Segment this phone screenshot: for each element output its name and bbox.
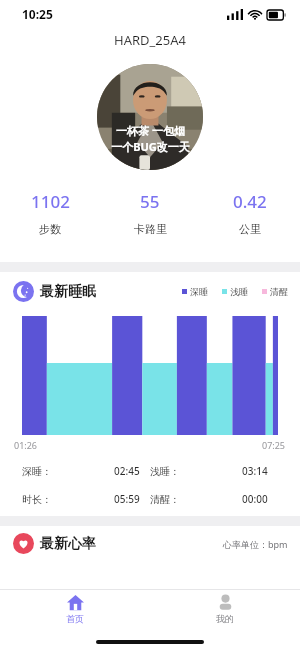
staticText: 05:59	[114, 492, 140, 506]
staticText: 步数	[39, 222, 61, 236]
staticText: 1102	[31, 190, 70, 213]
staticText: HARD_25A4	[114, 31, 186, 49]
staticText: 浅睡：	[150, 465, 180, 478]
staticText: 03:14	[242, 464, 268, 478]
button[interactable]: 0.42	[200, 188, 300, 238]
staticText: 公里	[239, 222, 261, 236]
staticText: 55	[140, 190, 160, 213]
staticText: 深睡：	[22, 465, 52, 478]
staticText: 0.42	[233, 190, 267, 213]
staticText: 07:25	[262, 439, 286, 451]
staticText: 02:45	[114, 464, 140, 478]
button[interactable]: Home	[0, 590, 150, 632]
staticText: 清醒	[270, 286, 288, 297]
staticText: 我的	[216, 613, 234, 624]
button[interactable]: Avatar	[97, 64, 203, 170]
staticText: 时长：	[22, 493, 52, 506]
staticText: 一个BUG改一天	[111, 139, 190, 154]
staticText: 深睡	[190, 286, 208, 297]
staticText: 一杯茶 一包烟	[116, 123, 185, 138]
staticText: 最新心率	[40, 535, 96, 553]
staticText: 心率单位：bpm	[223, 538, 288, 550]
button[interactable]: 1102	[0, 188, 100, 238]
staticText: 浅睡	[230, 286, 248, 297]
staticText: 01:26	[14, 439, 38, 451]
staticText: 00:00	[242, 492, 268, 506]
button[interactable]: Profile	[150, 590, 300, 632]
staticText: 10:25	[22, 6, 53, 22]
staticText: 清醒：	[150, 493, 180, 506]
staticText: 最新睡眠	[40, 283, 96, 301]
staticText: 卡路里	[134, 222, 167, 236]
button[interactable]: 55	[100, 188, 200, 238]
staticText: 首页	[66, 613, 84, 624]
